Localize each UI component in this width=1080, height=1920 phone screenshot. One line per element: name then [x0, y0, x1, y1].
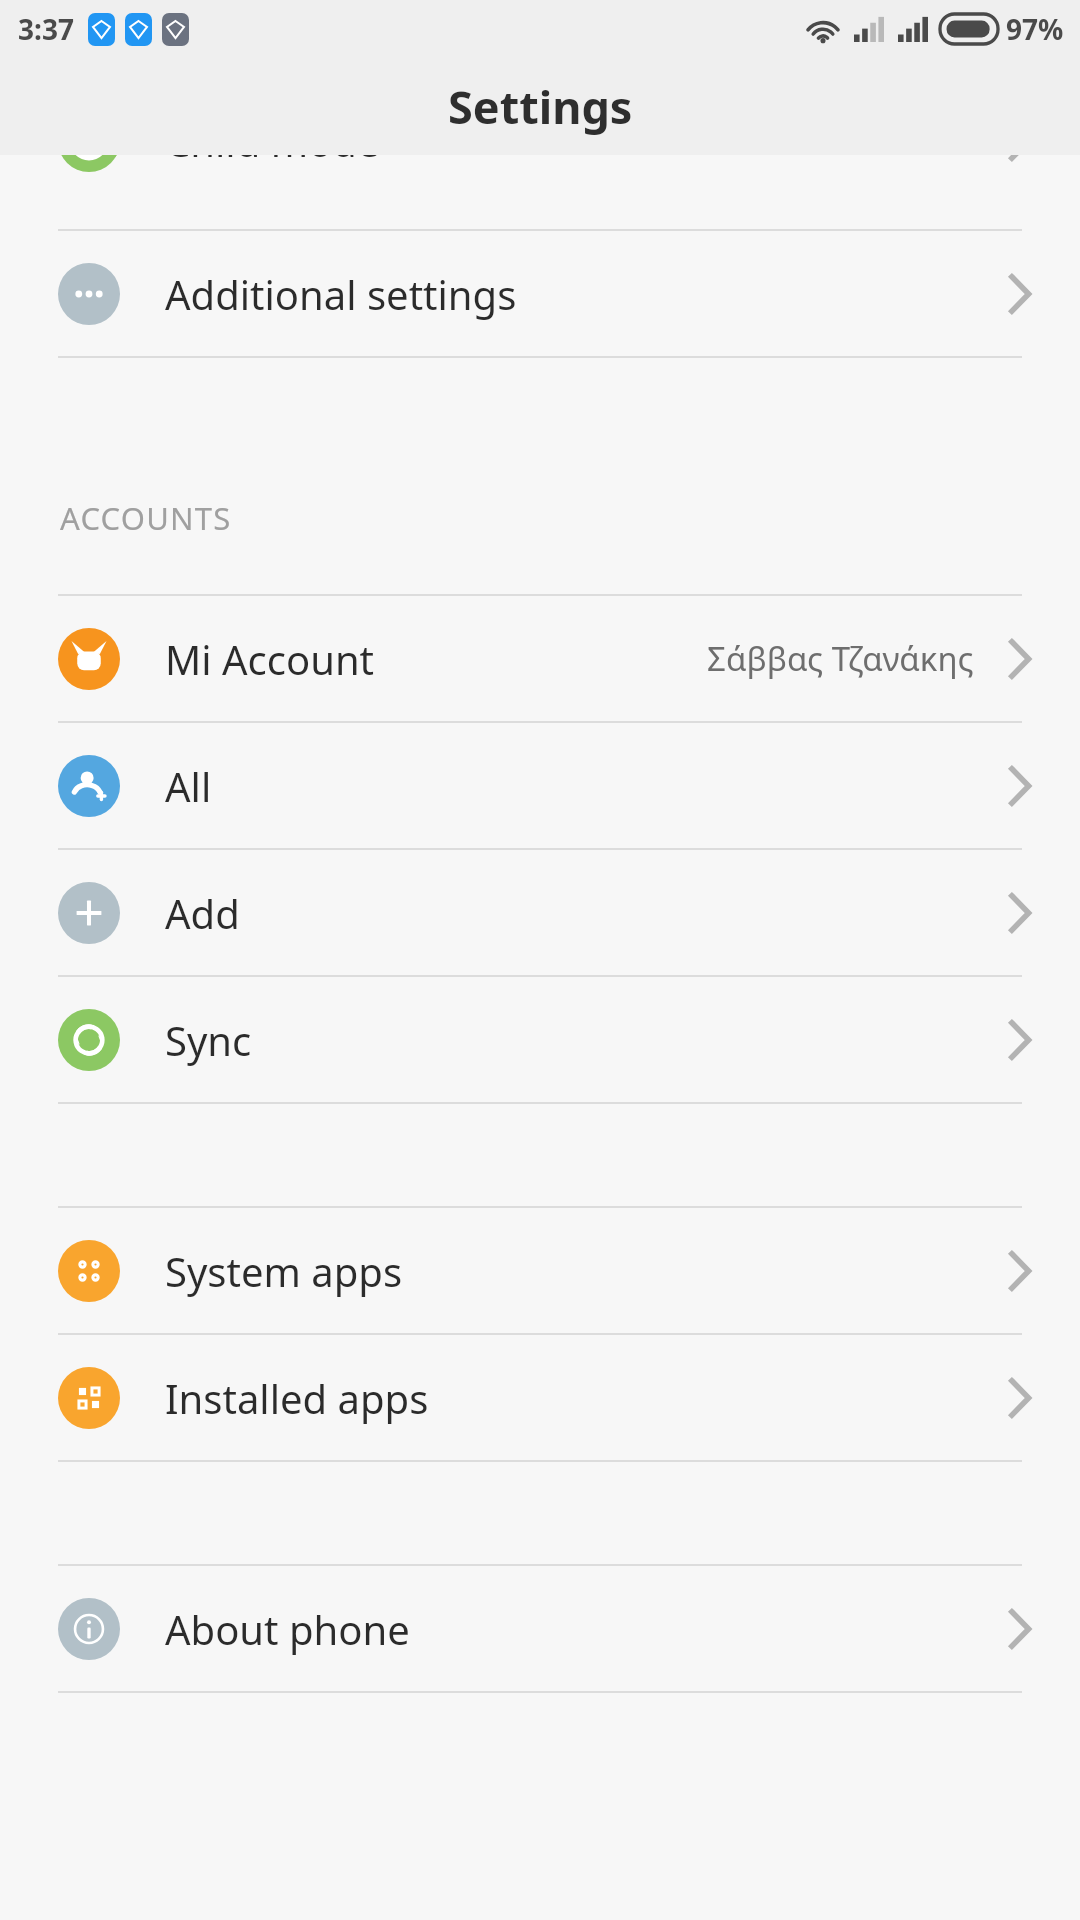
other: Open [1008, 765, 1032, 807]
staticText: Σάββας Τζανάκης [707, 636, 974, 681]
other: Open [1008, 638, 1032, 680]
staticText: Add [165, 886, 240, 940]
button[interactable]: All [0, 723, 1080, 848]
other: Open [1008, 1608, 1032, 1650]
staticText: ACCOUNTS [60, 497, 232, 539]
staticText: Sync [165, 1013, 252, 1067]
other: Open [1008, 1019, 1032, 1061]
staticText: System apps [165, 1244, 403, 1298]
other: Open [1008, 155, 1032, 162]
button[interactable]: Add [0, 850, 1080, 975]
button[interactable]: Child mode [0, 155, 1080, 178]
other: Open [1008, 1377, 1032, 1419]
staticText: 3:37 [18, 10, 74, 48]
button[interactable]: Additional settings [0, 231, 1080, 356]
staticText: Additional settings [165, 267, 517, 321]
other: Open [1008, 892, 1032, 934]
other: Open [1008, 273, 1032, 315]
staticText: Mi Account [165, 632, 375, 686]
button[interactable]: About phone [0, 1566, 1080, 1691]
staticText: About phone [165, 1602, 410, 1656]
staticText: Installed apps [165, 1371, 429, 1425]
button[interactable]: System apps [0, 1208, 1080, 1333]
staticText: 97% [1006, 10, 1064, 48]
staticText: All [165, 759, 212, 813]
button[interactable]: Mi Account [0, 596, 1080, 721]
button[interactable]: Installed apps [0, 1335, 1080, 1460]
button[interactable]: Sync [0, 977, 1080, 1102]
staticText: Settings [448, 76, 633, 137]
other: Open [1008, 1250, 1032, 1292]
staticText: Child mode [165, 155, 380, 168]
